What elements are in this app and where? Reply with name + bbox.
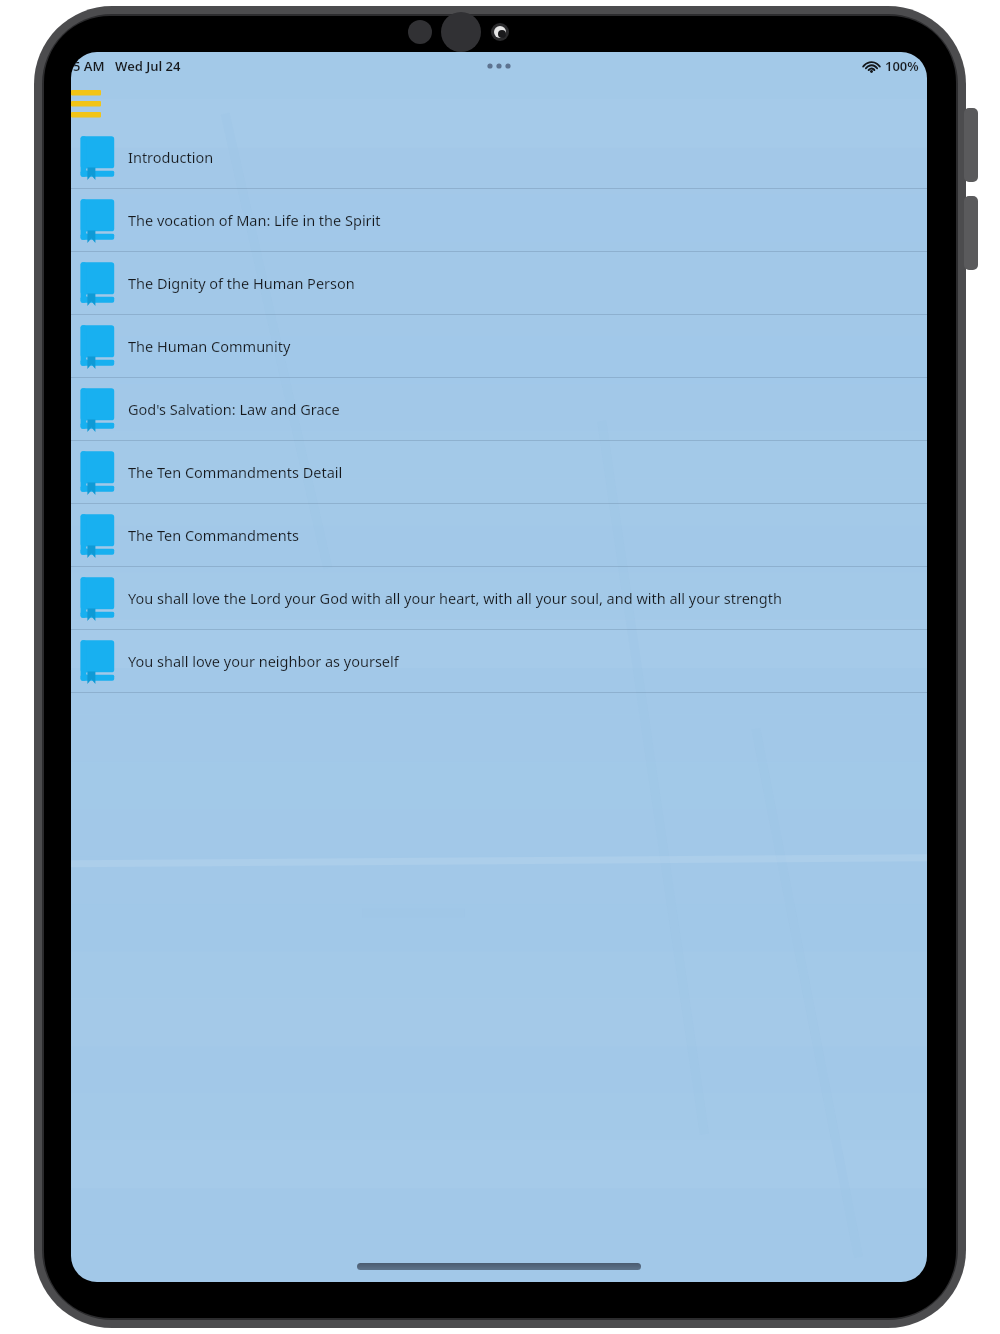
staticText: 5 AM [73,57,105,75]
staticText: You shall love your neighbor as yourself [128,651,399,671]
button[interactable]: Introduction [71,126,927,188]
button[interactable]: The Ten Commandments [71,504,927,566]
staticText: The vocation of Man: Life in the Spirit [128,210,381,230]
staticText: 100% [885,57,919,75]
button[interactable]: You shall love the Lord your God with al… [71,567,927,629]
button[interactable]: The Dignity of the Human Person [71,252,927,314]
button[interactable]: God's Salvation: Law and Grace [71,378,927,440]
button[interactable]: The Ten Commandments Detail [71,441,927,503]
staticText: The Dignity of the Human Person [128,273,355,293]
staticText: The Ten Commandments Detail [128,462,343,482]
button[interactable]: The vocation of Man: Life in the Spirit [71,189,927,251]
button[interactable]: Open navigation menu [71,82,117,116]
staticText: The Ten Commandments [128,525,299,545]
staticText: Introduction [128,147,214,167]
button[interactable]: The Human Community [71,315,927,377]
button[interactable]: You shall love your neighbor as yourself [71,630,927,692]
staticText: Wed Jul 24 [115,57,181,75]
staticText: God's Salvation: Law and Grace [128,399,340,419]
staticText: You shall love the Lord your God with al… [128,588,782,608]
staticText: The Human Community [128,336,291,356]
